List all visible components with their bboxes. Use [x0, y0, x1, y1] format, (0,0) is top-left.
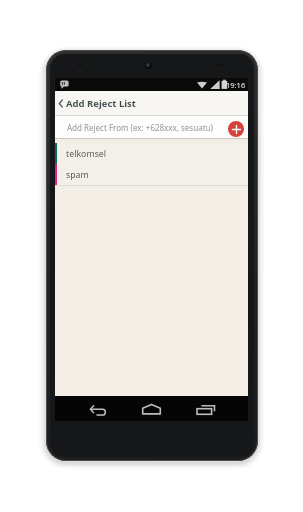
staticText: 19:16	[226, 80, 246, 90]
staticText: Add Reject List	[66, 97, 136, 110]
button[interactable]	[89, 405, 106, 416]
staticText: telkomsel	[66, 148, 107, 160]
button[interactable]: Add Reject From (ex: +628xxx, sesuatu)	[55, 116, 248, 139]
button[interactable]	[196, 405, 216, 415]
button[interactable]: telkomsel	[55, 143, 248, 164]
button[interactable]	[228, 121, 244, 137]
staticText: Add Reject From (ex: +628xxx, sesuatu)	[67, 122, 213, 133]
button[interactable]: spam	[55, 164, 248, 185]
button[interactable]	[142, 404, 161, 415]
staticText: spam	[66, 169, 89, 181]
button[interactable]: Add Reject List	[55, 91, 248, 115]
